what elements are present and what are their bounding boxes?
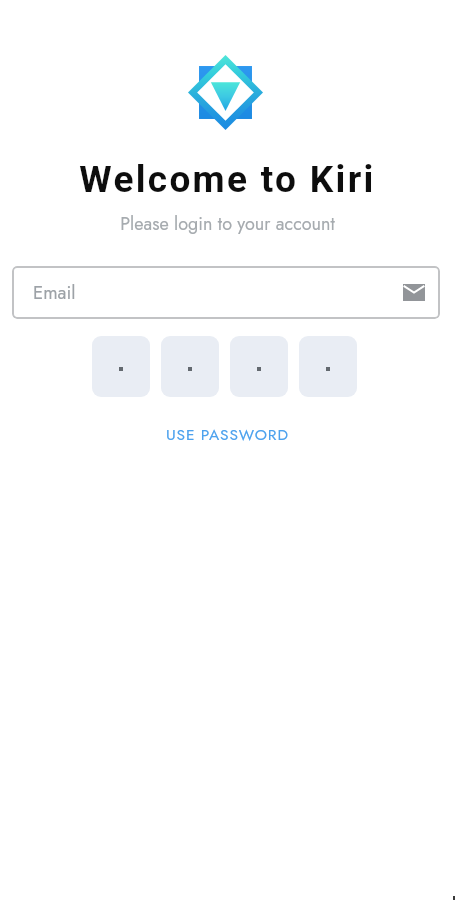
button[interactable] — [92, 336, 150, 397]
staticText: Please login to your account — [0, 211, 455, 237]
button[interactable] — [161, 336, 219, 397]
button[interactable]: USE PASSWORD — [154, 417, 301, 451]
other: Email — [403, 284, 425, 301]
staticText: Welcome to Kiri — [0, 158, 455, 201]
button[interactable]: Email — [12, 266, 440, 319]
button[interactable] — [299, 336, 357, 397]
staticText: USE PASSWORD — [166, 423, 289, 445]
staticText: Email — [33, 279, 76, 306]
button[interactable] — [230, 336, 288, 397]
